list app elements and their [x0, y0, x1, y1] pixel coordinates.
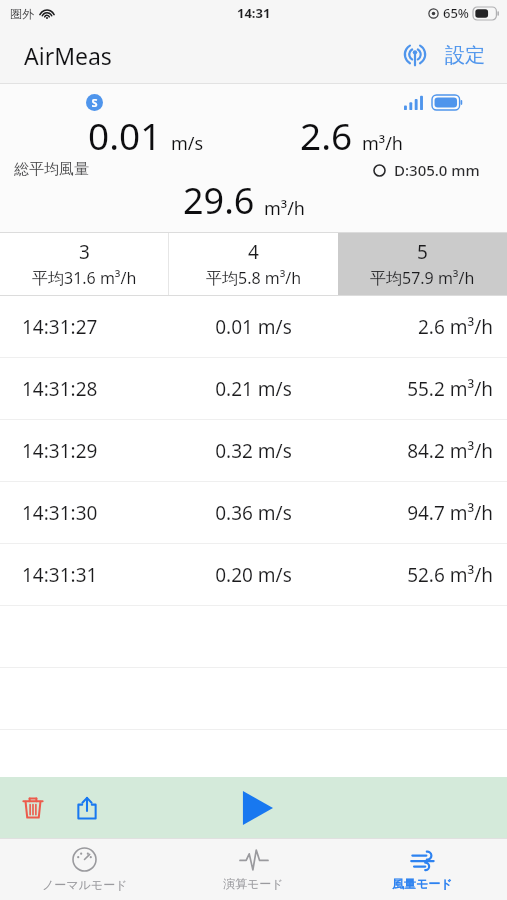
button[interactable]: Delete [10, 785, 56, 831]
button[interactable]: 風量モード [338, 839, 507, 900]
staticText: 2.6 [300, 110, 353, 160]
staticText: 0.01 [88, 110, 162, 160]
button[interactable]: Share [64, 785, 110, 831]
staticText: 4 [248, 239, 259, 265]
staticText: 0.21 m/s [169, 376, 338, 402]
button[interactable]: 3 [0, 233, 168, 295]
staticText: 0.01 m/s [169, 314, 338, 340]
staticText: 設定 [445, 43, 485, 68]
button[interactable]: 14:31:28 [0, 358, 507, 419]
staticText: 5 [417, 239, 428, 265]
staticText: m³/h [362, 131, 403, 156]
button[interactable]: 14:31:31 [0, 544, 507, 605]
staticText: S [86, 95, 103, 110]
button[interactable]: Start measurement [230, 781, 284, 835]
staticText: 94.7 m³/h [338, 500, 493, 526]
staticText: 14:31:31 [22, 562, 169, 588]
staticText: 圏外 [10, 6, 34, 21]
staticText: m/s [171, 131, 204, 156]
button[interactable]: 4 [169, 233, 338, 295]
staticText: 0.36 m/s [169, 500, 338, 526]
staticText: 総平均風量 [14, 160, 89, 179]
staticText: 風量モード [392, 876, 453, 891]
staticText: 84.2 m³/h [338, 438, 493, 464]
staticText: 14:31:27 [22, 314, 169, 340]
staticText: 平均5.8 m³/h [206, 267, 302, 289]
staticText: 演算モード [223, 876, 284, 891]
button[interactable]: 14:31:30 [0, 482, 507, 543]
staticText: 0.20 m/s [169, 562, 338, 588]
staticText: D:305.0 mm [394, 160, 480, 180]
staticText: ノーマルモード [42, 877, 128, 892]
staticText: m³/h [264, 196, 305, 221]
button[interactable]: Connect sensor [395, 36, 435, 76]
staticText: 2.6 m³/h [338, 314, 493, 340]
button[interactable]: 演算モード [169, 839, 338, 900]
staticText: 52.6 m³/h [338, 562, 493, 588]
staticText: 14:31 [237, 4, 271, 22]
staticText: 65% [443, 4, 469, 22]
staticText: 14:31:29 [22, 438, 169, 464]
staticText: 3 [79, 239, 90, 265]
staticText: 29.6 [183, 176, 255, 225]
staticText: 平均57.9 m³/h [370, 267, 475, 289]
button[interactable]: ノーマルモード [0, 839, 169, 900]
button[interactable]: 5 [338, 233, 507, 295]
staticText: AirMeas [24, 40, 112, 71]
staticText: 14:31:30 [22, 500, 169, 526]
button[interactable]: 14:31:27 [0, 296, 507, 357]
staticText: 14:31:28 [22, 376, 169, 402]
staticText: 55.2 m³/h [338, 376, 493, 402]
button[interactable]: 設定 [439, 35, 491, 76]
staticText: 0.32 m/s [169, 438, 338, 464]
button[interactable]: 14:31:29 [0, 420, 507, 481]
staticText: 平均31.6 m³/h [32, 267, 137, 289]
